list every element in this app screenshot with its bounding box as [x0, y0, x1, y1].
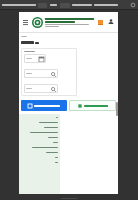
button[interactable]: Device settings	[130, 2, 136, 8]
button[interactable]: Search	[24, 69, 58, 78]
button[interactable]: Pick date	[24, 54, 46, 63]
button[interactable]	[69, 100, 116, 111]
button[interactable]: Account	[107, 18, 115, 26]
other: Pick date	[38, 56, 44, 62]
button[interactable]: Menu	[22, 19, 29, 26]
other: Search	[50, 71, 56, 77]
button[interactable]: Search	[24, 84, 58, 93]
button[interactable]: Notifications	[96, 18, 104, 26]
button[interactable]	[21, 100, 67, 111]
other: Search	[50, 86, 56, 92]
